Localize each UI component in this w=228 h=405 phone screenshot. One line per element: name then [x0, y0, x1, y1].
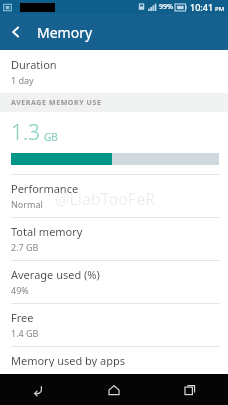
button[interactable]: Back	[0, 374, 76, 405]
button[interactable]: Duration	[0, 50, 228, 93]
staticText: 99%	[159, 2, 173, 12]
button[interactable]: Free	[0, 304, 228, 346]
staticText: Free	[11, 310, 34, 325]
staticText: AVERAGE MEMORY USE	[11, 98, 102, 108]
staticText: Performance	[11, 181, 79, 196]
staticText: Memory	[37, 23, 93, 42]
button[interactable]: Recent apps	[152, 374, 228, 405]
button[interactable]: Total memory	[0, 218, 228, 260]
button[interactable]: Home	[76, 374, 152, 405]
staticText: Average used (%)	[11, 267, 100, 282]
staticText: @LlabTooFeR	[55, 188, 156, 210]
staticText: Duration	[11, 57, 57, 72]
staticText: Total memory	[11, 224, 83, 239]
staticText: 10:41	[190, 1, 214, 13]
staticText: 2.7 GB	[11, 241, 39, 253]
button[interactable]: Performance	[0, 175, 228, 217]
staticText: 1.4 GB	[11, 327, 39, 339]
staticText: Normal	[11, 198, 43, 210]
staticText: Memory used by apps	[11, 353, 126, 367]
staticText: 1 day	[11, 74, 34, 86]
button[interactable]: Back	[0, 16, 32, 48]
button[interactable]: Average used (%)	[0, 261, 228, 303]
button[interactable]: Memory used by apps	[0, 347, 228, 374]
staticText: 49%	[11, 284, 29, 296]
staticText: 1.3	[11, 118, 41, 147]
staticText: PM	[215, 5, 225, 13]
staticText: GB	[44, 130, 58, 144]
